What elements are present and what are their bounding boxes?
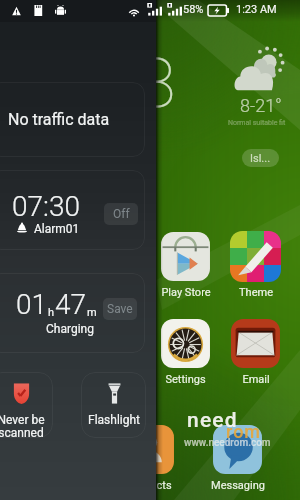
staticText: Normal suitable fit bbox=[228, 119, 286, 127]
staticText: Flashlight bbox=[88, 413, 140, 427]
staticText: 07:30 bbox=[12, 190, 81, 223]
staticText: 47 bbox=[55, 288, 87, 321]
staticText: Messaging bbox=[211, 479, 265, 492]
button[interactable]: Settings bbox=[150, 318, 221, 386]
staticText: m bbox=[87, 306, 97, 319]
staticText: h bbox=[48, 306, 55, 319]
staticText: Theme bbox=[239, 286, 273, 299]
staticText: No traffic data bbox=[8, 110, 110, 129]
staticText: rom bbox=[226, 421, 262, 442]
button[interactable]: Messaging bbox=[202, 424, 273, 492]
button[interactable]: Off bbox=[104, 203, 138, 225]
button[interactable]: Contacts bbox=[114, 424, 185, 492]
staticText: Save bbox=[107, 302, 133, 316]
staticText: need bbox=[187, 408, 238, 433]
button[interactable]: Flashlight bbox=[81, 372, 146, 438]
button[interactable] bbox=[0, 170, 145, 250]
staticText: Isl... bbox=[250, 152, 271, 165]
button[interactable]: Never be scanned bbox=[0, 372, 53, 438]
button[interactable]: Isl... bbox=[242, 149, 279, 167]
button[interactable]: Theme bbox=[220, 231, 291, 299]
button[interactable]: Email bbox=[220, 318, 291, 386]
staticText: Email bbox=[242, 373, 270, 386]
staticText: 58% bbox=[183, 3, 204, 16]
button[interactable] bbox=[0, 273, 145, 353]
button[interactable]: Save bbox=[103, 298, 137, 320]
staticText: 8 bbox=[138, 44, 176, 124]
staticText: Settings bbox=[165, 373, 206, 386]
button[interactable]: Play Store bbox=[150, 231, 221, 299]
staticText: 8-21° bbox=[240, 95, 282, 116]
button[interactable] bbox=[0, 82, 145, 157]
staticText: Contacts bbox=[127, 479, 172, 492]
staticText: 01 bbox=[16, 288, 48, 321]
staticText: www.needrom.com bbox=[184, 437, 271, 449]
staticText: Charging bbox=[46, 322, 94, 336]
staticText: Alarm01 bbox=[34, 222, 80, 236]
staticText: Never be scanned bbox=[0, 413, 45, 438]
staticText: Play Store bbox=[161, 286, 211, 299]
staticText: 1:23 AM bbox=[236, 3, 277, 16]
staticText: Off bbox=[113, 207, 130, 221]
